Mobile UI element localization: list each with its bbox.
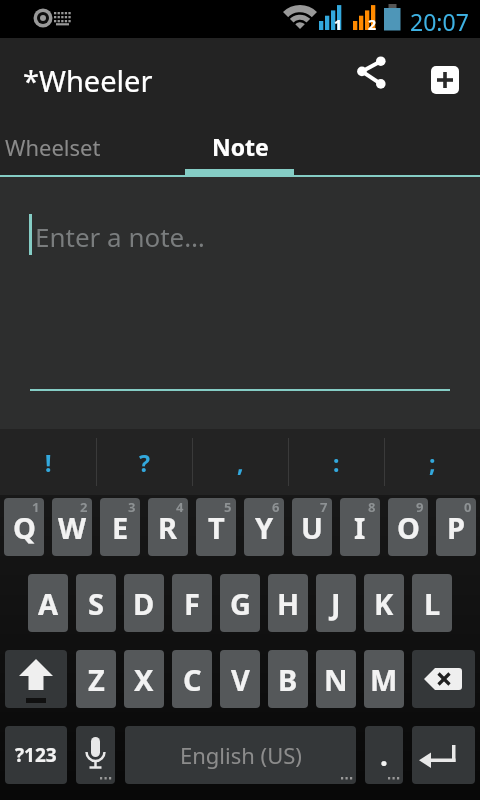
button[interactable]: Enter a note… (0, 177, 480, 429)
staticText: ? (139, 447, 150, 478)
button[interactable]: W (52, 498, 92, 556)
staticText: N (324, 660, 348, 699)
staticText: 1 (334, 15, 343, 34)
button[interactable]: : (288, 429, 384, 495)
button[interactable]: B (268, 650, 308, 708)
staticText: Z (88, 660, 105, 699)
staticText: U (301, 508, 323, 547)
button[interactable]: T (196, 498, 236, 556)
button[interactable]: L (412, 574, 452, 632)
staticText: . (380, 736, 388, 774)
staticText: 0 (464, 498, 472, 516)
staticText: 5 (224, 498, 232, 516)
staticText: 8 (368, 498, 376, 516)
button[interactable] (412, 650, 475, 708)
button[interactable]: R (148, 498, 188, 556)
button[interactable]: ?123 (5, 726, 67, 784)
button[interactable]: P (436, 498, 476, 556)
button[interactable]: I (340, 498, 380, 556)
button[interactable]: M (364, 650, 404, 708)
staticText: D (133, 584, 155, 623)
button[interactable]: O (388, 498, 428, 556)
button[interactable]: A (28, 574, 68, 632)
staticText: 7 (320, 498, 328, 516)
staticText: J (331, 584, 341, 623)
staticText: ! (45, 447, 52, 478)
staticText: R (158, 508, 178, 547)
button[interactable]: X (124, 650, 164, 708)
button[interactable] (340, 48, 404, 112)
staticText: C (183, 660, 202, 699)
button[interactable] (5, 650, 67, 708)
button[interactable]: Q (4, 498, 44, 556)
button[interactable] (431, 66, 459, 94)
staticText: X (134, 660, 154, 699)
staticText: : (333, 447, 340, 478)
staticText: ; (429, 447, 436, 478)
staticText: T (208, 508, 225, 547)
staticText: P (447, 508, 466, 547)
button[interactable]: Z (76, 650, 116, 708)
staticText: B (278, 660, 298, 699)
staticText: A (38, 584, 59, 623)
button[interactable]: D (124, 574, 164, 632)
button[interactable]: H (268, 574, 308, 632)
button[interactable]: , (192, 429, 288, 495)
button[interactable]: ? (96, 429, 192, 495)
button[interactable]: ; (384, 429, 480, 495)
staticText: H (277, 584, 300, 623)
staticText: W (58, 508, 87, 547)
staticText: I (354, 508, 366, 547)
staticText: V (231, 660, 250, 699)
button[interactable]: Wheelset (0, 122, 110, 177)
staticText: M (370, 660, 398, 699)
staticText: G (230, 584, 251, 623)
staticText: Wheelset (5, 132, 101, 162)
staticText: K (374, 584, 394, 623)
staticText: 20:07 (410, 6, 469, 37)
staticText: Y (255, 508, 274, 547)
staticText: 2 (368, 15, 377, 34)
button[interactable]: S (76, 574, 116, 632)
staticText: 1 (32, 498, 40, 516)
staticText: 2 (80, 498, 88, 516)
button[interactable]: English (US) (125, 726, 356, 784)
button[interactable]: ! (0, 429, 96, 495)
button[interactable]: Y (244, 498, 284, 556)
staticText: S (88, 584, 104, 623)
button[interactable]: F (172, 574, 212, 632)
staticText: 9 (416, 498, 424, 516)
button[interactable]: K (364, 574, 404, 632)
staticText: , (237, 447, 244, 478)
staticText: Q (13, 508, 36, 547)
staticText: F (184, 584, 200, 623)
staticText: English (US) (180, 740, 302, 770)
staticText: ?123 (15, 742, 57, 768)
staticText: Note (212, 131, 269, 162)
staticText: O (397, 508, 420, 547)
staticText: 4 (176, 498, 184, 516)
button[interactable]: C (172, 650, 212, 708)
button[interactable]: U (292, 498, 332, 556)
staticText: Enter a note… (35, 219, 205, 254)
button[interactable]: G (220, 574, 260, 632)
button[interactable]: J (316, 574, 356, 632)
staticText: L (424, 584, 441, 623)
button[interactable] (76, 726, 115, 784)
button[interactable]: . (365, 726, 403, 784)
staticText: 3 (128, 498, 136, 516)
button[interactable] (412, 726, 475, 784)
staticText: E (112, 508, 129, 547)
button[interactable]: E (100, 498, 140, 556)
staticText: 6 (272, 498, 280, 516)
button[interactable]: Note (0, 122, 480, 177)
button[interactable]: N (316, 650, 356, 708)
button[interactable]: V (220, 650, 260, 708)
staticText: *Wheeler (23, 61, 153, 100)
